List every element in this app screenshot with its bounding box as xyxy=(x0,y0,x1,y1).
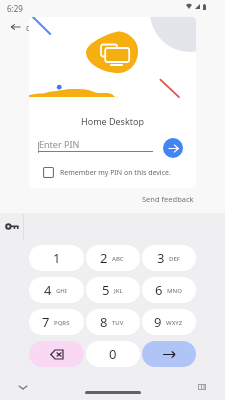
button[interactable]: 5 xyxy=(86,277,140,303)
button[interactable]: 9 xyxy=(142,309,196,335)
staticText: GHI xyxy=(56,287,67,295)
staticText: WXYZ xyxy=(166,319,183,327)
button[interactable]: 4 xyxy=(29,277,84,303)
staticText: 9 xyxy=(154,313,162,331)
staticText: Remember my PIN on this device. xyxy=(60,168,171,178)
button[interactable]: Back xyxy=(3,15,27,39)
staticText: Send feedback xyxy=(142,194,194,204)
button[interactable]: Send feedback xyxy=(139,191,197,207)
staticText: 8 xyxy=(100,313,108,331)
button[interactable]: Submit PIN xyxy=(163,138,183,158)
staticText: 6 xyxy=(155,281,163,299)
button[interactable]: 2 xyxy=(86,245,140,271)
staticText: Home Desktop xyxy=(29,115,196,127)
staticText: 7 xyxy=(42,313,50,331)
staticText: 0 xyxy=(109,345,117,363)
staticText: TUV xyxy=(112,319,124,327)
button[interactable]: Remember my PIN on this device. xyxy=(43,167,171,178)
button[interactable]: 8 xyxy=(86,309,140,335)
button[interactable]: Backspace xyxy=(29,341,84,367)
button[interactable]: 0 xyxy=(86,341,140,367)
button[interactable]: 6 xyxy=(142,277,196,303)
staticText: Enter PIN xyxy=(39,138,80,150)
staticText: 4 xyxy=(44,281,52,299)
button[interactable]: Switch keyboard xyxy=(193,378,211,396)
staticText: PQRS xyxy=(54,319,70,327)
button[interactable]: Password manager xyxy=(0,214,23,239)
button[interactable]: 1 xyxy=(29,245,84,271)
button[interactable]: Hide keyboard xyxy=(14,378,32,396)
staticText: c xyxy=(26,22,30,33)
staticText: 2 xyxy=(100,249,108,267)
button[interactable]: 3 xyxy=(142,245,196,271)
staticText: MNO xyxy=(167,287,182,295)
staticText: 6:29 xyxy=(7,3,23,14)
button[interactable]: Enter xyxy=(142,341,196,367)
staticText: 5 xyxy=(102,281,110,299)
staticText: DEF xyxy=(169,255,180,263)
staticText: JKL xyxy=(114,287,123,295)
button[interactable]: 7 xyxy=(29,309,84,335)
staticText: ABC xyxy=(112,255,124,263)
staticText: 3 xyxy=(157,249,165,267)
staticText: 1 xyxy=(53,249,61,267)
